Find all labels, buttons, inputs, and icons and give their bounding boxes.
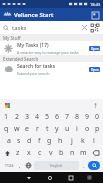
staticText: My Stuff [3, 35, 21, 41]
button[interactable]: Back [18, 172, 39, 183]
button[interactable]: r [32, 123, 42, 135]
button[interactable]: 7 [62, 111, 72, 123]
button[interactable]: 2 [12, 111, 22, 123]
button[interactable]: Clear search [80, 23, 89, 32]
staticText: Open [91, 47, 99, 51]
button[interactable]: Screenshot [81, 172, 97, 183]
staticText: 7 [65, 112, 70, 122]
staticText: e [25, 124, 29, 134]
button[interactable]: d [24, 135, 34, 147]
staticText: , [19, 162, 21, 170]
staticText: Veliance Start [14, 11, 54, 19]
button[interactable]: Voice input [91, 101, 99, 109]
button[interactable]: q [1, 123, 12, 135]
button[interactable]: j [66, 135, 77, 147]
staticText: ?123 [5, 163, 14, 168]
button[interactable]: p [92, 123, 102, 135]
staticText: z [16, 148, 20, 158]
staticText: . [83, 162, 85, 170]
button[interactable]: 1 [1, 111, 12, 123]
staticText: i [76, 124, 78, 134]
button[interactable]: Search [88, 161, 100, 170]
staticText: 5 [45, 112, 50, 122]
staticText: 8 [75, 112, 80, 122]
button[interactable]: Backspace [89, 147, 102, 159]
button[interactable]: t [42, 123, 52, 135]
button[interactable]: Shift [1, 147, 13, 159]
staticText: o [85, 124, 90, 134]
button[interactable]: Period [80, 160, 87, 171]
staticText: a [7, 136, 11, 146]
staticText: n [70, 148, 75, 158]
button[interactable]: c [34, 147, 45, 159]
staticText: 2 [15, 112, 20, 122]
staticText: x [27, 148, 31, 158]
staticText: q [4, 124, 9, 134]
button[interactable]: f [34, 135, 44, 147]
button[interactable]: s [14, 135, 24, 147]
button[interactable]: Scan QR code [90, 23, 100, 33]
button[interactable]: Change language [23, 160, 33, 171]
button[interactable]: 9 [82, 111, 92, 123]
button[interactable]: Scan code [90, 10, 100, 20]
button[interactable]: Search for tasks [0, 62, 103, 76]
button[interactable]: Open [89, 67, 100, 72]
staticText: v [49, 148, 53, 158]
button[interactable]: Comma [16, 160, 23, 171]
button[interactable]: v [45, 147, 56, 159]
staticText: 3 [25, 112, 30, 122]
button[interactable]: Google [4, 102, 11, 109]
button[interactable]: w [12, 123, 22, 135]
button[interactable]: Home [39, 172, 60, 183]
staticText: My Tasks (17) [17, 42, 49, 49]
staticText: s [17, 136, 21, 146]
button[interactable]: b [56, 147, 67, 159]
button[interactable]: 3 [22, 111, 32, 123]
staticText: j [71, 136, 73, 146]
button[interactable]: z [13, 147, 23, 159]
staticText: Extend your search [17, 71, 50, 76]
button[interactable]: y [52, 123, 62, 135]
staticText: 4 [35, 112, 40, 122]
button[interactable]: Open [89, 46, 100, 51]
button[interactable]: 5 [42, 111, 52, 123]
button[interactable]: Recent apps [60, 172, 81, 183]
staticText: g [47, 136, 52, 146]
button[interactable]: h [55, 135, 66, 147]
staticText: b [59, 148, 64, 158]
button[interactable]: l [88, 135, 99, 147]
button[interactable]: tasks [3, 21, 100, 34]
button[interactable]: 6 [52, 111, 62, 123]
staticText: f [38, 136, 41, 146]
button[interactable]: My Tasks (17) [0, 41, 103, 55]
staticText: d [27, 136, 32, 146]
button[interactable]: English [34, 161, 79, 170]
button[interactable]: e [22, 123, 32, 135]
staticText: k [81, 136, 85, 146]
button[interactable]: n [67, 147, 78, 159]
button[interactable]: x [23, 147, 34, 159]
button[interactable]: m [78, 147, 89, 159]
button[interactable]: 0 [92, 111, 102, 123]
staticText: t [46, 124, 49, 134]
staticText: u [65, 124, 70, 134]
button[interactable]: 8 [72, 111, 82, 123]
staticText: r [36, 124, 39, 134]
button[interactable]: ?123 [2, 160, 16, 171]
staticText: c [38, 148, 42, 158]
button[interactable]: a [4, 135, 14, 147]
button[interactable]: g [44, 135, 55, 147]
staticText: p [95, 124, 100, 134]
button[interactable]: i [72, 123, 82, 135]
staticText: w [14, 124, 20, 134]
button[interactable]: u [62, 123, 72, 135]
staticText: Open [91, 68, 99, 72]
button[interactable]: k [77, 135, 88, 147]
button[interactable]: 4 [32, 111, 42, 123]
staticText: 0 [95, 112, 100, 122]
staticText: Search for tasks [17, 63, 56, 70]
staticText: A smarter way to manage your tasks [17, 50, 79, 55]
staticText: 1 [4, 112, 9, 122]
staticText: English [50, 163, 63, 168]
button[interactable]: o [82, 123, 92, 135]
